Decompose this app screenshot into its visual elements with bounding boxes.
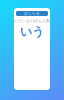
staticText: ただいまの待ち人数 [14, 18, 50, 23]
staticText: いう [20, 24, 44, 39]
staticText: おしらせ [24, 11, 40, 16]
